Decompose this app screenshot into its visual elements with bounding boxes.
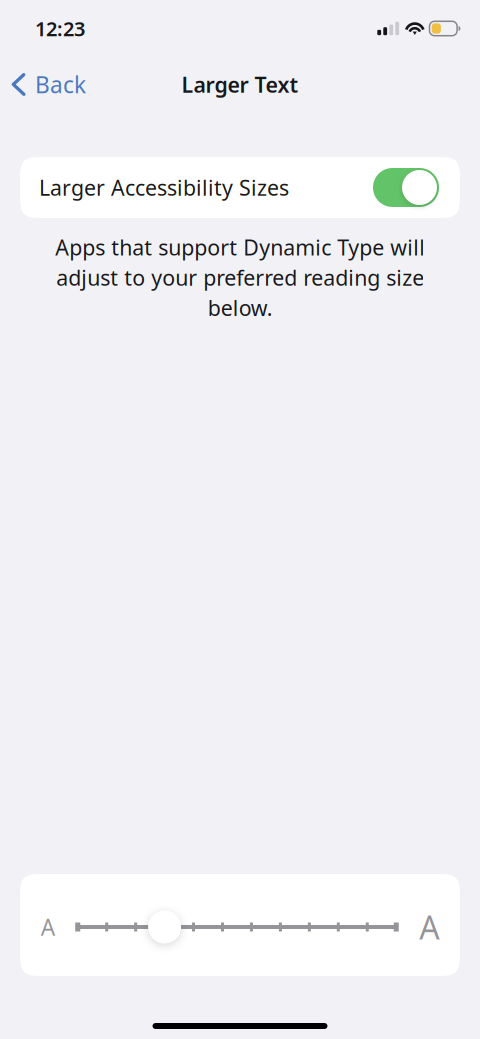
- button[interactable]: Larger Accessibility Sizes: [20, 157, 460, 218]
- button[interactable]: Back: [0, 60, 96, 104]
- staticText: 12:23: [35, 15, 85, 42]
- staticText: Larger Accessibility Sizes: [39, 173, 289, 202]
- staticText: Apps that support Dynamic Type will adju…: [55, 233, 425, 322]
- staticText: A: [41, 912, 55, 942]
- button[interactable]: A: [20, 874, 460, 976]
- staticText: Larger Text: [181, 70, 298, 99]
- staticText: A: [419, 906, 439, 948]
- staticText: Back: [35, 69, 86, 99]
